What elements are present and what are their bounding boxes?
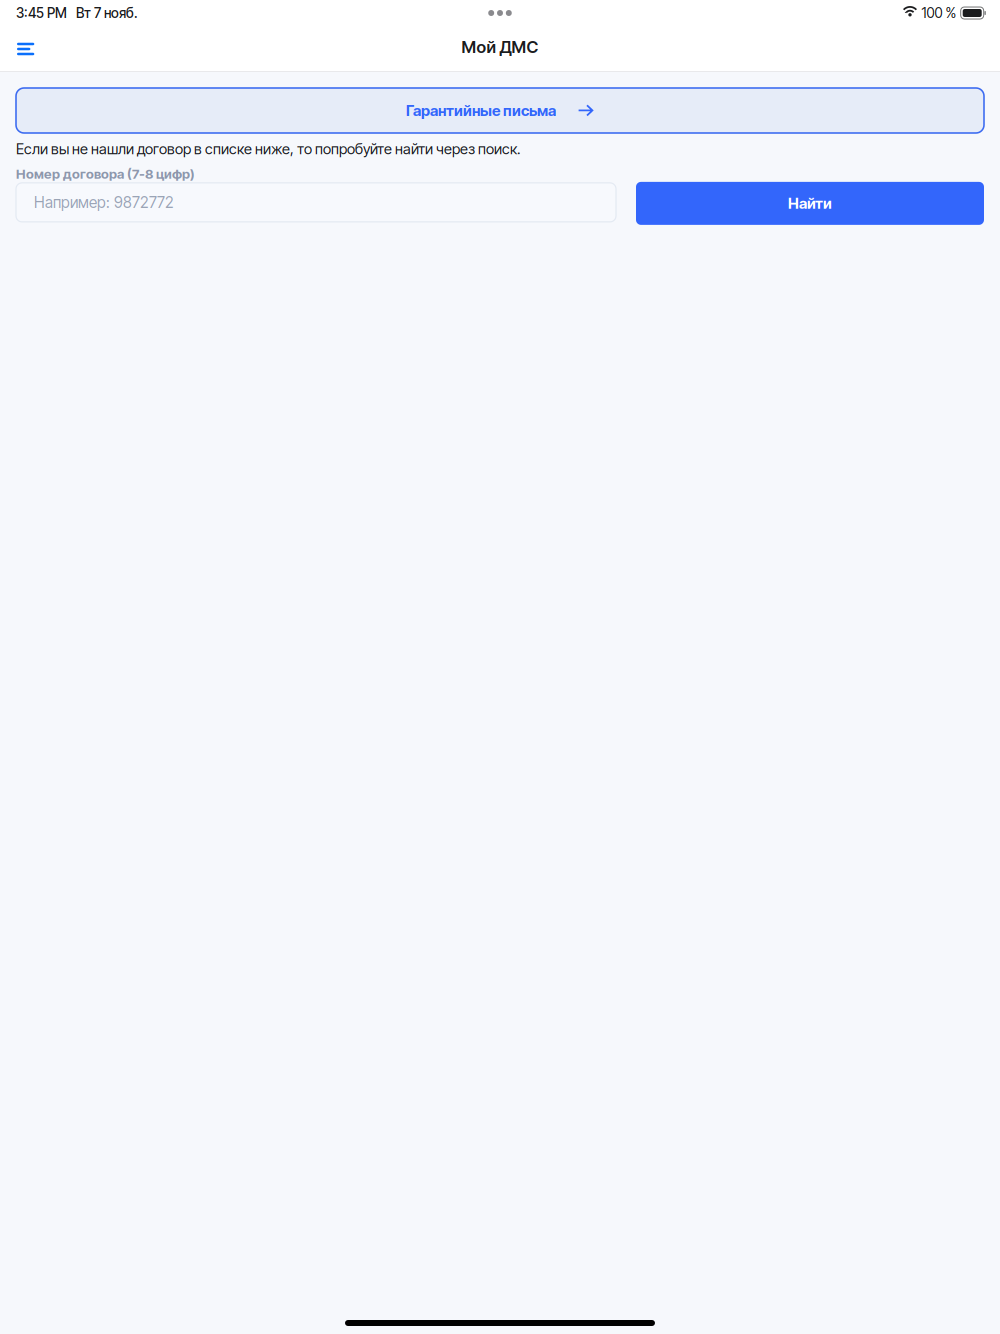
staticText: Номер договора (7-8 цифр)	[16, 166, 195, 182]
staticText: Гарантийные письма	[406, 101, 556, 120]
staticText: Вт 7 нояб.	[76, 5, 138, 21]
staticText: Если вы не нашли договор в списке ниже, …	[16, 140, 520, 158]
staticText: Например: 9872772	[34, 193, 174, 212]
staticText: Найти	[788, 194, 832, 212]
staticText: Мой ДМС	[461, 37, 538, 57]
button[interactable]: Гарантийные письма	[16, 88, 984, 133]
button[interactable]: Menu	[0, 32, 47, 66]
staticText: 3:45 PM	[16, 5, 67, 21]
staticText: 100 %	[921, 4, 956, 21]
button[interactable]: Найти	[636, 182, 984, 225]
